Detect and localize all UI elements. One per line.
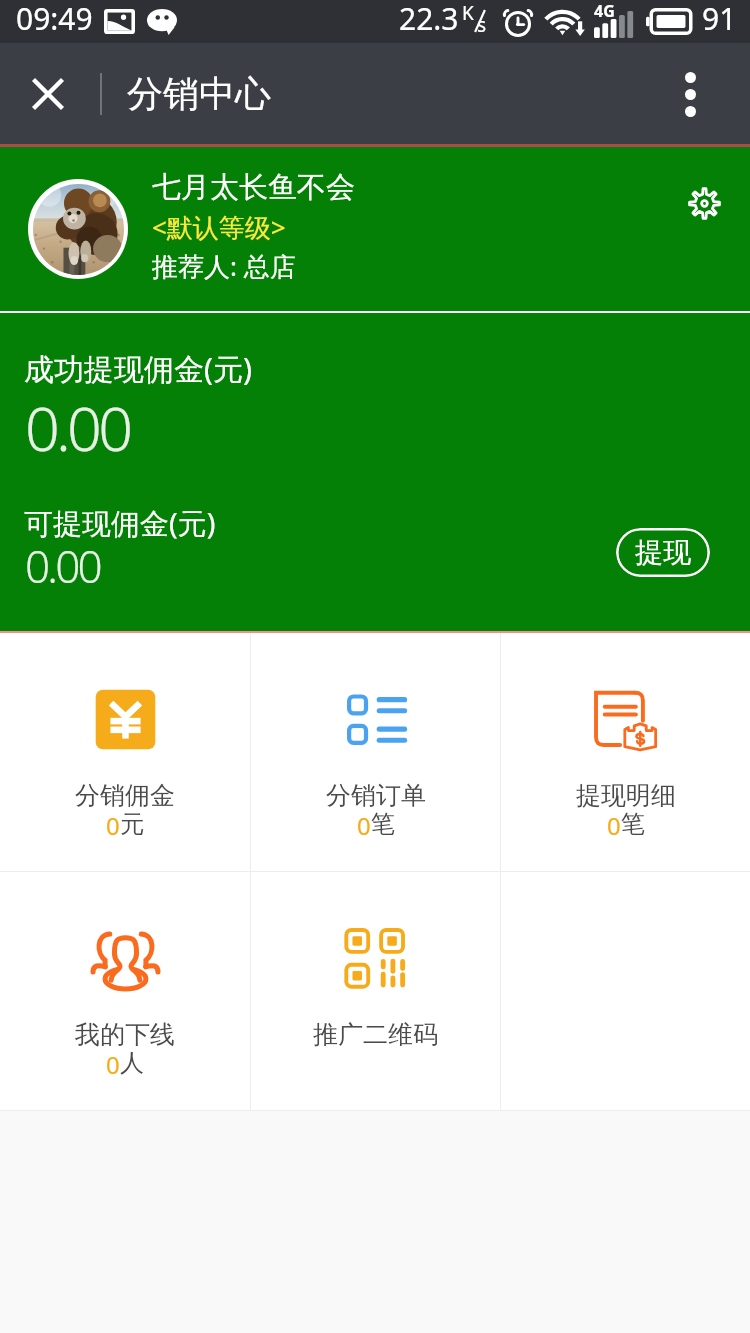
button[interactable]: 提现 bbox=[616, 528, 710, 577]
staticText: 成功提现佣金(元) bbox=[24, 348, 252, 389]
button[interactable]: More options bbox=[658, 62, 722, 126]
staticText: K bbox=[462, 0, 474, 26]
staticText: 22.3 bbox=[399, 0, 459, 39]
staticText: 推广二维码 bbox=[313, 1019, 438, 1050]
button[interactable]: 分销订单 bbox=[251, 633, 500, 871]
staticText: 可提现佣金(元) bbox=[24, 503, 216, 543]
button[interactable]: 我的下线 bbox=[0, 872, 250, 1110]
staticText: 我的下线 bbox=[75, 1019, 175, 1050]
staticText: 91 bbox=[702, 0, 737, 39]
button[interactable]: 分销佣金 bbox=[0, 633, 250, 871]
button[interactable]: 提现明细 bbox=[501, 633, 750, 871]
staticText: 人 bbox=[120, 1048, 144, 1078]
staticText: s bbox=[477, 12, 487, 38]
staticText: 笔 bbox=[621, 809, 645, 839]
staticText: 笔 bbox=[371, 809, 395, 839]
staticText: 0 bbox=[357, 809, 371, 842]
staticText: 0.00 bbox=[25, 386, 130, 469]
staticText: 0 bbox=[607, 809, 621, 842]
staticText: 0 bbox=[106, 1048, 120, 1081]
staticText: 09:49 bbox=[16, 0, 93, 39]
staticText: 4G bbox=[594, 0, 615, 22]
staticText: 推荐人: 总店 bbox=[152, 248, 296, 284]
staticText: 0.00 bbox=[25, 536, 100, 596]
staticText: 元 bbox=[120, 809, 144, 839]
button[interactable]: 推广二维码 bbox=[251, 872, 500, 1110]
button[interactable]: Settings bbox=[673, 172, 735, 234]
staticText: <默认等级> bbox=[152, 209, 286, 245]
staticText: 提现明细 bbox=[576, 780, 676, 811]
button[interactable]: Close bbox=[16, 62, 80, 126]
staticText: 分销佣金 bbox=[75, 780, 175, 811]
staticText: 0 bbox=[106, 809, 120, 842]
staticText: 提现 bbox=[635, 535, 691, 570]
staticText: 分销订单 bbox=[326, 780, 426, 811]
staticText: 分销中心 bbox=[127, 71, 271, 116]
staticText: 七月太长鱼不会 bbox=[152, 169, 355, 206]
